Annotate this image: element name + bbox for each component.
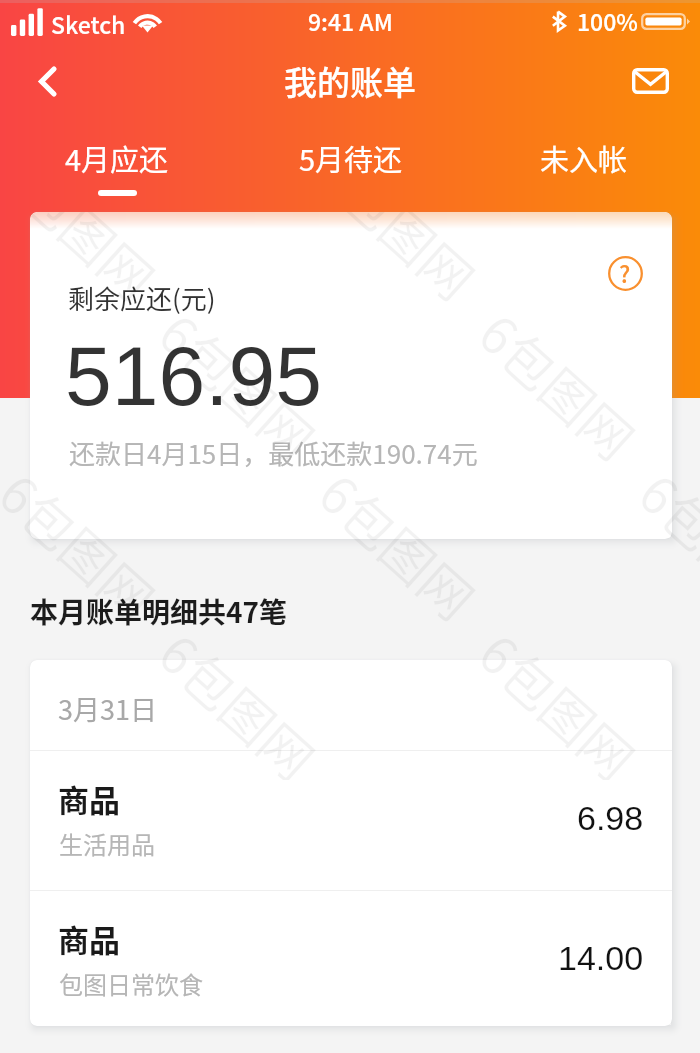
staticText: 6包图网 <box>625 212 672 314</box>
staticText: 6包图网 <box>30 212 172 314</box>
staticText: 6包图网 <box>465 615 652 780</box>
button[interactable]: Help <box>605 253 645 293</box>
staticText: 14.00 <box>558 939 644 977</box>
staticText: 生活用品 <box>59 826 155 861</box>
staticText: 6包图网 <box>145 295 332 398</box>
button[interactable]: 未入帐 <box>467 126 700 168</box>
staticText: 6包图网 <box>145 398 332 474</box>
staticText: ? <box>619 256 631 289</box>
staticText: 商品 <box>58 916 120 961</box>
button[interactable]: 剩余应还(元) <box>30 212 672 539</box>
button[interactable]: 商品 <box>30 891 672 1026</box>
staticText: Sketch <box>51 7 126 40</box>
staticText: 6包图网 <box>465 398 652 474</box>
staticText: 5月待还 <box>299 137 403 179</box>
button[interactable]: Messages <box>621 52 679 110</box>
staticText: 6包图网 <box>0 455 172 634</box>
staticText: 6包图网 <box>145 615 332 780</box>
staticText: 6包图网 <box>625 455 700 634</box>
staticText: 100% <box>577 4 638 37</box>
staticText: 6包图网 <box>305 455 492 634</box>
staticText: 包图日常饮食 <box>59 966 203 1001</box>
button[interactable]: 5月待还 <box>234 126 467 168</box>
staticText: 6包图网 <box>625 775 700 780</box>
staticText: 6.98 <box>577 799 644 837</box>
staticText: 6包图网 <box>465 295 652 398</box>
staticText: 本月账单明细共47笔 <box>30 591 288 632</box>
staticText: 6包图网 <box>305 212 492 314</box>
staticText: 商品 <box>58 776 120 821</box>
button[interactable]: 商品 <box>30 751 672 890</box>
staticText: 3月31日 <box>58 689 157 728</box>
staticText: 还款日4月15日，最低还款190.74元 <box>69 434 478 472</box>
staticText: 剩余应还(元) <box>68 279 216 317</box>
button[interactable]: 4月应还 <box>0 126 234 168</box>
button[interactable]: Back <box>18 52 76 110</box>
staticText: 516.95 <box>65 329 322 423</box>
staticText: 9:41 AM <box>308 4 393 37</box>
staticText: 4月应还 <box>65 137 169 179</box>
staticText: 6包图网 <box>0 775 172 780</box>
staticText: 未入帐 <box>540 137 628 179</box>
staticText: 我的账单 <box>284 57 416 105</box>
